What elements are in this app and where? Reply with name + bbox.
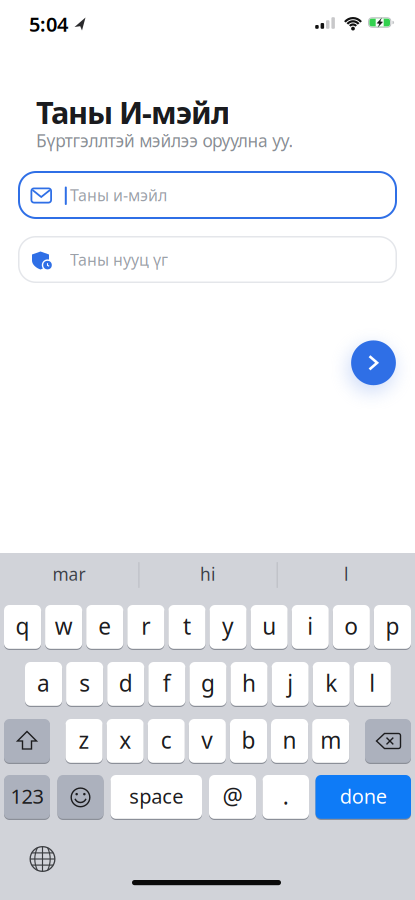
- button[interactable]: k: [313, 662, 350, 707]
- button[interactable]: l: [354, 662, 391, 707]
- button[interactable]: t: [168, 605, 205, 650]
- button[interactable]: c: [148, 719, 185, 764]
- button[interactable]: z: [65, 719, 103, 764]
- staticText: Бүртгэллтэй мэйлээ оруулна уу.: [36, 129, 293, 152]
- staticText: z: [78, 725, 89, 755]
- button[interactable]: .: [262, 775, 309, 820]
- button[interactable]: s: [66, 662, 103, 707]
- button[interactable]: l: [277, 556, 415, 592]
- button[interactable]: e: [86, 605, 123, 650]
- staticText: q: [16, 611, 30, 641]
- staticText: h: [242, 668, 256, 698]
- staticText: d: [119, 668, 133, 698]
- button[interactable]: Emoji: [57, 775, 103, 820]
- staticText: f: [163, 668, 171, 698]
- staticText: l: [369, 668, 375, 698]
- button[interactable]: o: [333, 605, 370, 650]
- button[interactable]: x: [107, 719, 144, 764]
- button[interactable]: r: [127, 605, 164, 650]
- button[interactable]: Таны нууц үг: [0, 0, 415, 900]
- button[interactable]: @: [209, 775, 256, 820]
- button[interactable]: g: [189, 662, 226, 707]
- staticText: y: [222, 611, 234, 641]
- button[interactable]: Таны и-мэйл: [0, 0, 415, 900]
- staticText: e: [98, 611, 111, 641]
- staticText: Таны И-мэйл: [36, 92, 230, 132]
- button[interactable]: a: [25, 662, 62, 707]
- staticText: g: [201, 668, 215, 698]
- button[interactable]: h: [230, 662, 268, 707]
- button[interactable]: u: [251, 605, 288, 650]
- staticText: space: [129, 783, 183, 809]
- button[interactable]: p: [374, 605, 411, 650]
- staticText: .: [283, 781, 289, 811]
- staticText: k: [325, 668, 337, 698]
- staticText: Таны и-мэйл: [70, 184, 167, 206]
- button[interactable]: mar: [0, 556, 138, 592]
- button[interactable]: v: [189, 719, 226, 764]
- button[interactable]: m: [312, 719, 349, 764]
- button[interactable]: f: [148, 662, 185, 707]
- button[interactable]: done: [315, 775, 411, 820]
- button[interactable]: i: [292, 605, 329, 650]
- staticText: 123: [10, 783, 43, 809]
- button[interactable]: Delete: [365, 719, 411, 764]
- button[interactable]: Next: [351, 340, 396, 385]
- staticText: n: [283, 725, 297, 755]
- staticText: m: [320, 725, 341, 755]
- staticText: mar: [52, 562, 85, 585]
- staticText: @: [222, 781, 242, 811]
- staticText: 5:04: [29, 11, 68, 37]
- staticText: l: [344, 562, 348, 585]
- staticText: p: [385, 611, 399, 641]
- staticText: v: [201, 725, 213, 755]
- button[interactable]: n: [271, 719, 308, 764]
- button[interactable]: Shift: [4, 719, 50, 764]
- staticText: o: [344, 611, 358, 641]
- staticText: r: [141, 611, 150, 641]
- staticText: Таны нууц үг: [70, 249, 168, 270]
- button[interactable]: q: [4, 605, 41, 650]
- button[interactable]: Next keyboard: [29, 846, 55, 872]
- button[interactable]: hi: [138, 556, 276, 592]
- staticText: a: [37, 668, 50, 698]
- staticText: done: [340, 783, 387, 809]
- staticText: x: [119, 725, 131, 755]
- staticText: t: [183, 611, 191, 641]
- staticText: w: [55, 611, 73, 641]
- staticText: s: [79, 668, 90, 698]
- staticText: i: [307, 611, 313, 641]
- button[interactable]: space: [110, 775, 202, 820]
- button[interactable]: y: [209, 605, 247, 650]
- button[interactable]: b: [230, 719, 267, 764]
- staticText: c: [161, 725, 172, 755]
- staticText: b: [241, 725, 255, 755]
- button[interactable]: j: [272, 662, 309, 707]
- staticText: j: [287, 668, 293, 698]
- button[interactable]: w: [45, 605, 82, 650]
- staticText: hi: [200, 562, 215, 585]
- button[interactable]: d: [107, 662, 144, 707]
- button[interactable]: 123: [4, 775, 50, 820]
- staticText: u: [262, 611, 276, 641]
